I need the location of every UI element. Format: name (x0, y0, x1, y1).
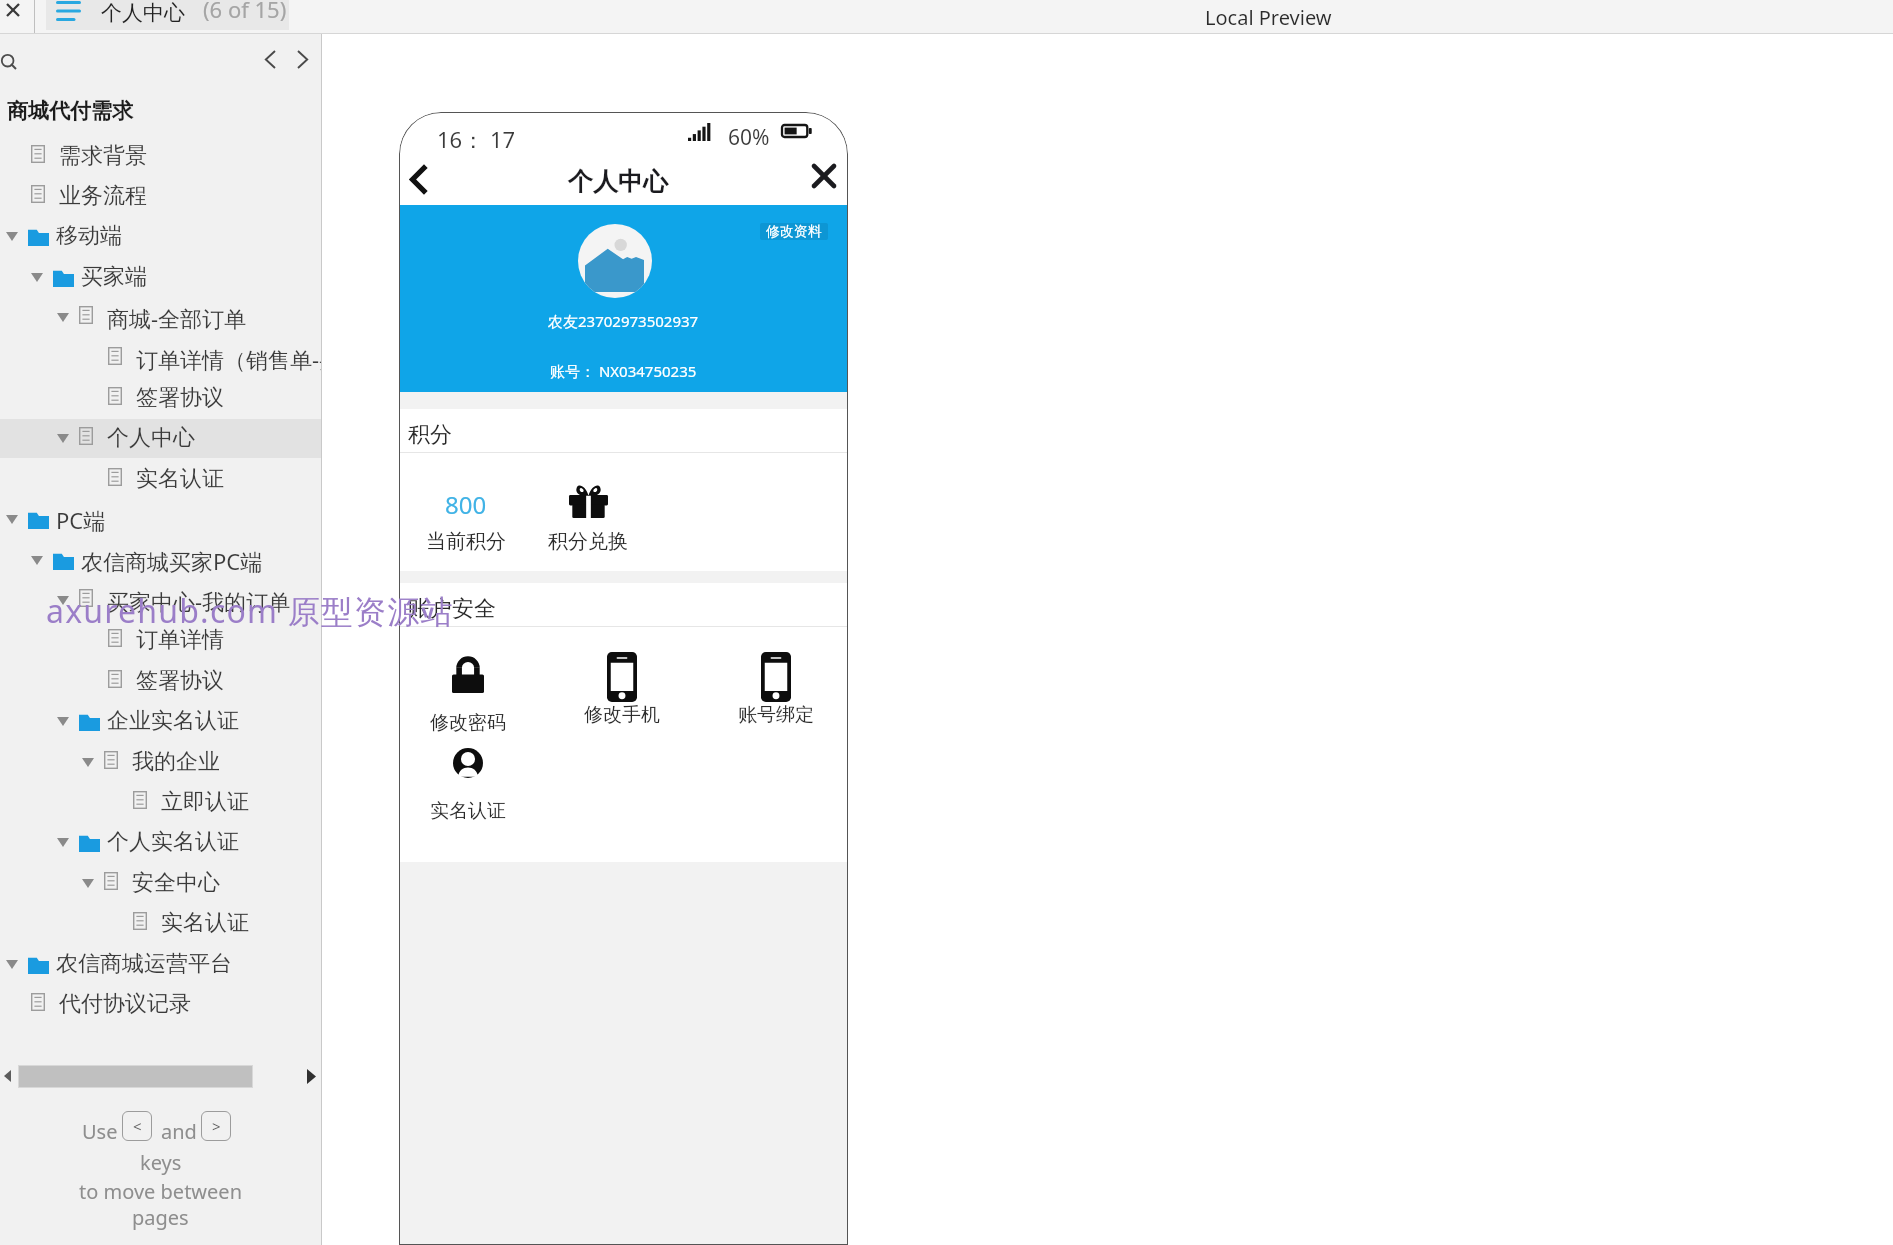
staticText: 需求背景 (59, 142, 147, 170)
button[interactable]: 实名认证 (0, 904, 321, 943)
button[interactable]: Close preview (0, 0, 25, 20)
button[interactable]: 订单详情 (0, 621, 321, 660)
staticText: 个人中心 (107, 424, 195, 452)
staticText: PC端 (56, 505, 106, 535)
button[interactable]: 需求背景 (0, 137, 321, 176)
button[interactable]: Scroll right (303, 1063, 319, 1089)
staticText: (6 of 15) (203, 0, 287, 24)
staticText: Local Preview (1205, 4, 1332, 31)
staticText: to move between (79, 1178, 242, 1205)
staticText: 农友23702973502937 (548, 311, 699, 331)
button[interactable]: 农信商城运营平台 (0, 945, 321, 984)
button[interactable]: 订单详情（销售单-买 (0, 339, 321, 378)
staticText: 积分 (408, 421, 452, 449)
staticText: 农信商城买家PC端 (81, 546, 263, 576)
button[interactable]: 业务流程 (0, 177, 321, 216)
button[interactable]: 个人中心 (46, 0, 289, 30)
button[interactable]: 修改密码 (407, 650, 529, 739)
staticText: < (133, 1116, 142, 1136)
button[interactable]: 签署协议 (0, 379, 321, 418)
staticText: 签署协议 (136, 667, 224, 695)
staticText: 修改资料 (766, 223, 822, 240)
staticText: 企业实名认证 (107, 707, 239, 735)
button[interactable]: 个人中心 (0, 419, 321, 458)
staticText: 个人中心 (101, 0, 185, 26)
button[interactable]: 积分兑换 (527, 453, 649, 571)
staticText: 订单详情 (136, 626, 224, 654)
staticText: 订单详情（销售单-买 (136, 344, 321, 374)
button[interactable]: 农信商城买家PC端 (0, 541, 321, 580)
button[interactable]: 商城-全部订单 (0, 298, 321, 337)
staticText: 商城代付需求 (7, 98, 133, 124)
staticText: 积分兑换 (548, 529, 628, 554)
staticText: > (212, 1116, 221, 1136)
staticText: 800 (445, 488, 487, 521)
button[interactable]: 个人实名认证 (0, 823, 321, 862)
staticText: 商城-全部订单 (107, 303, 247, 333)
button[interactable]: 立即认证 (0, 783, 321, 822)
staticText: 账号： NX034750235 (550, 361, 697, 381)
staticText: 买家端 (81, 263, 147, 291)
staticText: 修改密码 (430, 711, 506, 735)
button[interactable]: 代付协议记录 (0, 985, 321, 1024)
button[interactable]: Back (399, 163, 433, 205)
button[interactable]: 安全中心 (0, 864, 321, 903)
staticText: 修改手机 (584, 703, 660, 727)
staticText: 实名认证 (161, 909, 249, 937)
staticText: 实名认证 (136, 465, 224, 493)
button[interactable]: 账号绑定 (715, 646, 837, 731)
staticText: 农信商城运营平台 (56, 950, 232, 978)
button[interactable]: 签署协议 (0, 662, 321, 701)
staticText: 移动端 (56, 222, 122, 250)
staticText: 实名认证 (430, 799, 506, 823)
button[interactable]: Scroll left (0, 1063, 14, 1089)
staticText: 账户安全 (408, 595, 496, 623)
staticText: 60% (728, 123, 770, 152)
staticText: pages (132, 1204, 189, 1231)
button[interactable]: 我的企业 (0, 743, 321, 782)
staticText: axurehub.com 原型资源站 (46, 589, 454, 633)
button[interactable]: 实名认证 (407, 742, 529, 827)
button[interactable]: 买家端 (0, 258, 321, 297)
staticText: 立即认证 (161, 788, 249, 816)
button[interactable]: Close (803, 163, 845, 205)
staticText: 签署协议 (136, 384, 224, 412)
button[interactable]: 修改手机 (561, 646, 683, 731)
button[interactable]: 实名认证 (0, 460, 321, 499)
button[interactable]: Previous page (255, 44, 285, 74)
staticText: 代付协议记录 (59, 990, 191, 1018)
button[interactable]: 移动端 (0, 217, 321, 256)
button[interactable]: 企业实名认证 (0, 702, 321, 741)
staticText: 个人实名认证 (107, 828, 239, 856)
staticText: 我的企业 (132, 748, 220, 776)
staticText: 个人中心 (568, 166, 668, 197)
button[interactable]: 800 (405, 453, 527, 571)
staticText: 账号绑定 (738, 703, 814, 727)
staticText: 当前积分 (426, 529, 506, 554)
staticText: and (161, 1118, 197, 1145)
button[interactable]: 买家中心-我的订单 (0, 581, 321, 620)
staticText: 安全中心 (132, 869, 220, 897)
staticText: Use (82, 1118, 118, 1145)
staticText: 16： 17 (437, 124, 516, 154)
staticText: 业务流程 (59, 182, 147, 210)
button[interactable]: Next page (288, 44, 318, 74)
staticText: keys (140, 1149, 182, 1176)
staticText: 买家中心-我的订单 (107, 586, 291, 616)
button[interactable]: PC端 (0, 500, 321, 539)
button[interactable]: 修改资料 (760, 223, 828, 240)
